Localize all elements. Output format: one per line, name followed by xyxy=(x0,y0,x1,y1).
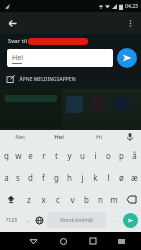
button[interactable]: More options xyxy=(121,14,139,32)
staticText: ø xyxy=(119,172,124,183)
button[interactable]: i xyxy=(89,144,102,166)
staticText: i xyxy=(94,150,97,161)
button[interactable]: Change language xyxy=(33,210,45,230)
staticText: u xyxy=(80,150,85,161)
button[interactable]: Home xyxy=(48,232,78,250)
staticText: k xyxy=(93,172,98,183)
staticText: z xyxy=(27,194,31,205)
staticText: ÅPNE MELDINGSAPPEN xyxy=(19,76,76,83)
button[interactable]: o xyxy=(102,144,115,166)
button[interactable]: æ xyxy=(128,166,141,188)
button[interactable]: Hei xyxy=(7,49,113,67)
button[interactable]: d xyxy=(24,166,37,188)
button[interactable]: Shift xyxy=(0,188,21,210)
button[interactable]: m xyxy=(107,188,121,210)
staticText: . xyxy=(113,216,115,224)
button[interactable]: å xyxy=(128,144,141,166)
staticText: n xyxy=(98,194,103,205)
staticText: Nei xyxy=(15,133,25,141)
staticText: Hi xyxy=(96,133,102,141)
staticText: t xyxy=(55,150,58,161)
button[interactable]: Back xyxy=(3,14,21,32)
button[interactable]: f xyxy=(37,166,50,188)
staticText: w xyxy=(15,150,22,161)
staticText: f xyxy=(42,172,45,183)
button[interactable]: t xyxy=(50,144,63,166)
button[interactable]: Send xyxy=(117,48,137,68)
button[interactable]: h xyxy=(63,166,76,188)
button[interactable]: , xyxy=(22,210,33,230)
staticText: j xyxy=(81,172,84,183)
staticText: Norsk bokmål xyxy=(60,217,93,224)
staticText: s xyxy=(16,172,20,183)
button[interactable]: Send message xyxy=(123,213,138,228)
button[interactable]: v xyxy=(65,188,79,210)
staticText: g xyxy=(54,172,59,183)
button[interactable]: l xyxy=(102,166,115,188)
button[interactable]: k xyxy=(89,166,102,188)
staticText: m xyxy=(110,194,118,205)
button[interactable]: n xyxy=(93,188,107,210)
button[interactable]: z xyxy=(21,188,36,210)
button[interactable]: Recent apps xyxy=(78,232,108,250)
staticText: Hei xyxy=(54,133,64,141)
button[interactable]: g xyxy=(50,166,63,188)
button[interactable]: Screenshot xyxy=(108,232,135,250)
button[interactable]: e xyxy=(24,144,37,166)
button[interactable]: x xyxy=(36,188,51,210)
button[interactable]: c xyxy=(51,188,65,210)
button[interactable]: w xyxy=(12,144,24,166)
staticText: , xyxy=(27,216,29,224)
button[interactable]: Hi xyxy=(79,130,119,144)
staticText: b xyxy=(84,194,89,205)
staticText: q xyxy=(4,150,9,161)
staticText: ?123 xyxy=(6,217,17,224)
button[interactable]: Hei xyxy=(39,130,79,144)
staticText: a xyxy=(4,172,9,183)
button[interactable]: p xyxy=(115,144,128,166)
staticText: v xyxy=(70,194,75,205)
button[interactable]: u xyxy=(76,144,89,166)
staticText: æ xyxy=(131,172,138,183)
staticText: Svar til xyxy=(7,37,28,45)
staticText: c xyxy=(56,194,60,205)
button[interactable]: ø xyxy=(115,166,128,188)
button[interactable]: b xyxy=(79,188,93,210)
button[interactable]: ÅPNE MELDINGSAPPEN xyxy=(7,72,141,86)
staticText: d xyxy=(28,172,33,183)
staticText: o xyxy=(106,150,111,161)
button[interactable]: Voice input xyxy=(119,130,141,144)
staticText: l xyxy=(107,172,110,183)
staticText: p xyxy=(119,150,124,161)
button[interactable]: a xyxy=(0,166,12,188)
staticText: y xyxy=(67,150,72,161)
staticText: e xyxy=(28,150,33,161)
button[interactable]: y xyxy=(63,144,76,166)
staticText: h xyxy=(67,172,72,183)
button[interactable]: j xyxy=(76,166,89,188)
staticText: Hei xyxy=(12,53,23,63)
button[interactable]: Backspace xyxy=(121,188,141,210)
staticText: 04.23 xyxy=(125,3,138,10)
button[interactable]: Nei xyxy=(0,130,39,144)
button[interactable]: r xyxy=(37,144,50,166)
button[interactable]: q xyxy=(0,144,12,166)
button[interactable]: s xyxy=(12,166,24,188)
button[interactable]: Norsk bokmål xyxy=(47,212,106,228)
staticText: r xyxy=(42,150,46,161)
button[interactable]: Back xyxy=(18,232,48,250)
staticText: å xyxy=(132,150,137,161)
button[interactable]: ?123 xyxy=(0,210,22,230)
staticText: x xyxy=(41,194,46,205)
